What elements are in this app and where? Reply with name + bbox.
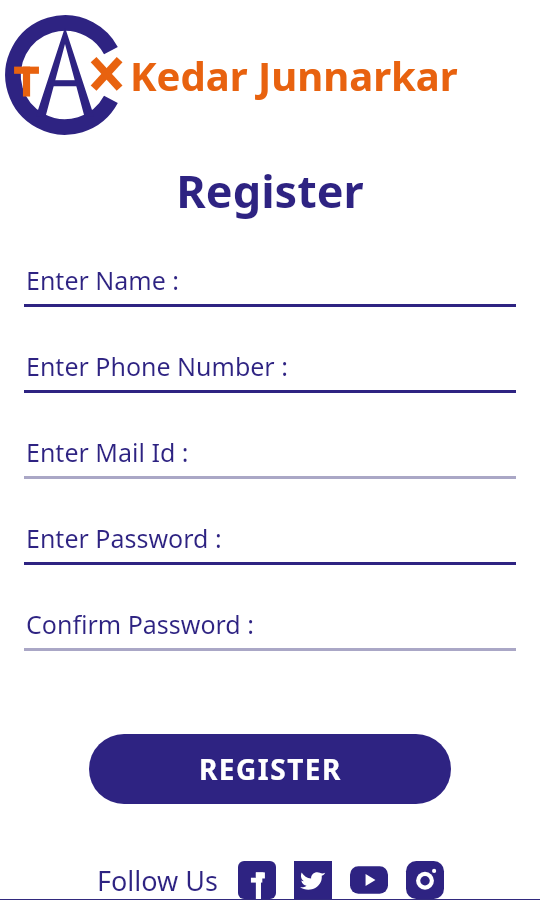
staticText: Enter Mail Id : xyxy=(26,435,189,469)
button[interactable]: Enter Phone Number : xyxy=(24,349,516,435)
staticText: Enter Password : xyxy=(26,521,222,555)
staticText: Enter Name : xyxy=(26,263,180,297)
button[interactable]: Enter Mail Id : xyxy=(24,435,516,521)
button[interactable]: Enter Password : xyxy=(24,521,516,607)
staticText: REGISTER xyxy=(199,750,342,788)
staticText: Enter Phone Number : xyxy=(26,349,288,383)
button[interactable]: Twitter xyxy=(294,861,332,899)
button[interactable]: Enter Name : xyxy=(24,263,516,349)
staticText: Follow Us xyxy=(97,862,218,899)
button[interactable]: Confirm Password : xyxy=(24,607,516,693)
button[interactable]: Instagram xyxy=(406,861,444,899)
staticText: Confirm Password : xyxy=(26,607,254,641)
staticText: Kedar Junnarkar xyxy=(130,48,458,102)
button[interactable]: REGISTER xyxy=(89,734,451,804)
button[interactable]: YouTube xyxy=(350,861,388,899)
staticText: Register xyxy=(0,160,540,221)
button[interactable]: Facebook xyxy=(238,861,276,899)
